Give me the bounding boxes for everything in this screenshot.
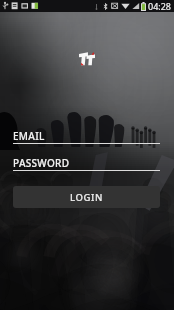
staticText: PASSWORD [13,156,70,170]
button[interactable]: EMAIL [13,129,160,144]
staticText: 04:28 [148,0,172,12]
other: Logo [79,51,95,66]
staticText: LOGIN [70,191,103,204]
button[interactable]: PASSWORD [13,156,160,171]
staticText: EMAIL [13,129,45,143]
button[interactable]: LOGIN [13,186,160,208]
